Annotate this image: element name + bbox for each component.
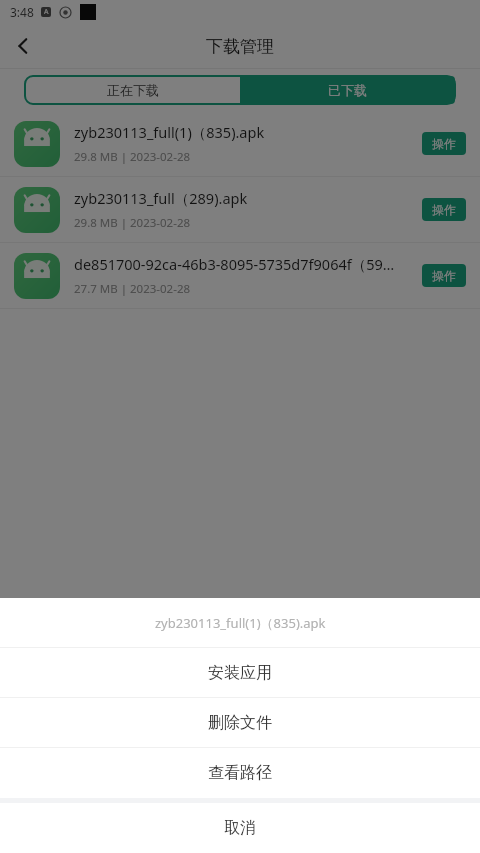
staticText: 正在下载 — [107, 82, 159, 98]
staticText: 查看路径 — [208, 763, 272, 783]
button[interactable]: 操作 — [422, 132, 466, 155]
staticText: 操作 — [432, 136, 456, 151]
staticText: 操作 — [432, 202, 456, 217]
button[interactable]: 查看路径 — [0, 748, 480, 798]
staticText: zyb230113_full(1)（835).apk — [74, 122, 265, 142]
staticText: 删除文件 — [208, 713, 272, 733]
staticText: A — [44, 7, 49, 17]
staticText: zyb230113_full(1)（835).apk — [155, 614, 326, 632]
button[interactable]: 已下载 — [240, 76, 455, 104]
button[interactable]: 操作 — [422, 264, 466, 287]
staticText: 已下载 — [328, 82, 367, 98]
button[interactable]: 正在下载 — [25, 76, 240, 104]
button[interactable]: 取消 — [0, 803, 480, 853]
staticText: 27.7 MB | 2023-02-28 — [74, 281, 191, 297]
staticText: 29.8 MB | 2023-02-28 — [74, 149, 191, 165]
button[interactable]: 操作 — [422, 198, 466, 221]
button[interactable]: de851700-92ca-46b3-8095-5735d7f9064f（59… — [0, 243, 480, 308]
staticText: 操作 — [432, 268, 456, 283]
staticText: 3:48 — [10, 4, 34, 20]
button[interactable]: zyb230113_full（289).apk — [0, 177, 480, 242]
staticText: 29.8 MB | 2023-02-28 — [74, 215, 191, 231]
staticText: 安装应用 — [208, 663, 272, 683]
staticText: 下载管理 — [206, 36, 274, 57]
button[interactable]: 删除文件 — [0, 698, 480, 748]
button[interactable]: zyb230113_full(1)（835).apk — [0, 111, 480, 176]
staticText: de851700-92ca-46b3-8095-5735d7f9064f（59… — [74, 254, 395, 274]
staticText: 取消 — [224, 818, 256, 838]
staticText: zyb230113_full（289).apk — [74, 188, 248, 208]
button[interactable]: 安装应用 — [0, 648, 480, 698]
button[interactable]: Back — [0, 24, 46, 68]
